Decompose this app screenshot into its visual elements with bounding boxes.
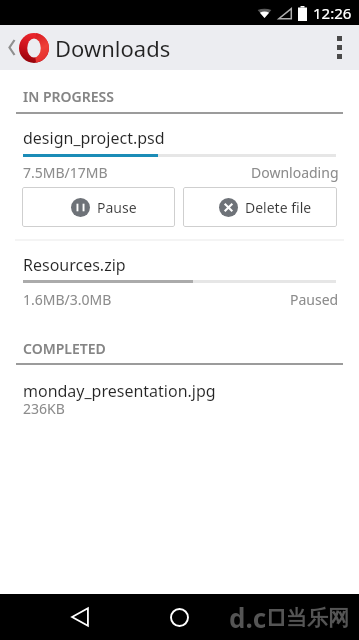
staticText: Downloads <box>55 33 171 63</box>
staticText: 12:26 <box>313 3 352 23</box>
staticText: Downloading <box>251 163 339 182</box>
staticText: d.c <box>229 600 267 635</box>
staticText: 当乐网 <box>286 605 349 631</box>
staticText: Paused <box>290 290 339 309</box>
staticText: 7.5MB/17MB <box>23 163 108 182</box>
staticText: Resources.zip <box>23 254 126 276</box>
button[interactable]: Home <box>163 594 195 640</box>
staticText: 236KB <box>23 399 65 418</box>
staticText: Delete file <box>245 198 312 217</box>
staticText: monday_presentation.jpg <box>23 380 216 402</box>
staticText: 1.6MB/3.0MB <box>23 290 112 309</box>
staticText: COMPLETED <box>23 339 106 358</box>
button[interactable]: More options <box>319 25 359 70</box>
staticText: design_project.psd <box>23 127 165 149</box>
button[interactable]: Delete file <box>183 187 337 227</box>
staticText: Pause <box>97 198 137 217</box>
button[interactable]: Navigate up <box>0 25 49 70</box>
button[interactable]: Back <box>64 594 96 640</box>
button[interactable]: Pause <box>22 187 175 227</box>
staticText: IN PROGRESS <box>23 87 114 106</box>
